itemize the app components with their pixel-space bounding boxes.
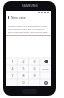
staticText: Done (42, 67, 49, 70)
button[interactable] (40, 72, 51, 79)
staticText: and continue with the secure sign in. (8, 30, 49, 33)
other: Backspace (44, 60, 48, 63)
button[interactable]: 3 (29, 58, 40, 65)
button[interactable]: Done (40, 65, 51, 72)
button[interactable] (6, 79, 18, 86)
button[interactable]: 2 (18, 58, 29, 65)
staticText: 8 (22, 73, 25, 78)
staticText: 4 (11, 66, 14, 71)
staticText: 1 (11, 59, 14, 64)
staticText: SAMSUNG (22, 4, 38, 8)
button[interactable]: Backspace (40, 58, 51, 65)
staticText: 7 (11, 73, 14, 78)
staticText: 6 (33, 66, 36, 71)
button[interactable]: Settings (40, 79, 51, 86)
button[interactable]: 9 (29, 72, 40, 79)
button[interactable]: 6 (29, 65, 40, 72)
staticText: 2 (22, 59, 25, 64)
staticText: Please enter the verification code we se… (8, 24, 49, 27)
staticText: 5 (22, 66, 25, 71)
button[interactable]: 8 (18, 72, 29, 79)
other: Settings (44, 81, 48, 85)
button[interactable]: 5 (18, 65, 29, 72)
staticText: 9 (33, 73, 36, 78)
staticText: 3 (33, 59, 36, 64)
button[interactable] (29, 79, 40, 86)
button[interactable]: 0 (18, 79, 29, 86)
button[interactable]: New note (8, 14, 51, 21)
button[interactable]: 1 (6, 58, 18, 65)
staticText: 0 (22, 80, 25, 85)
staticText: New note (11, 16, 26, 20)
button[interactable]: 7 (6, 72, 18, 79)
button[interactable]: 4 (6, 65, 18, 72)
staticText: your phone number to confirm your identi… (8, 27, 49, 30)
